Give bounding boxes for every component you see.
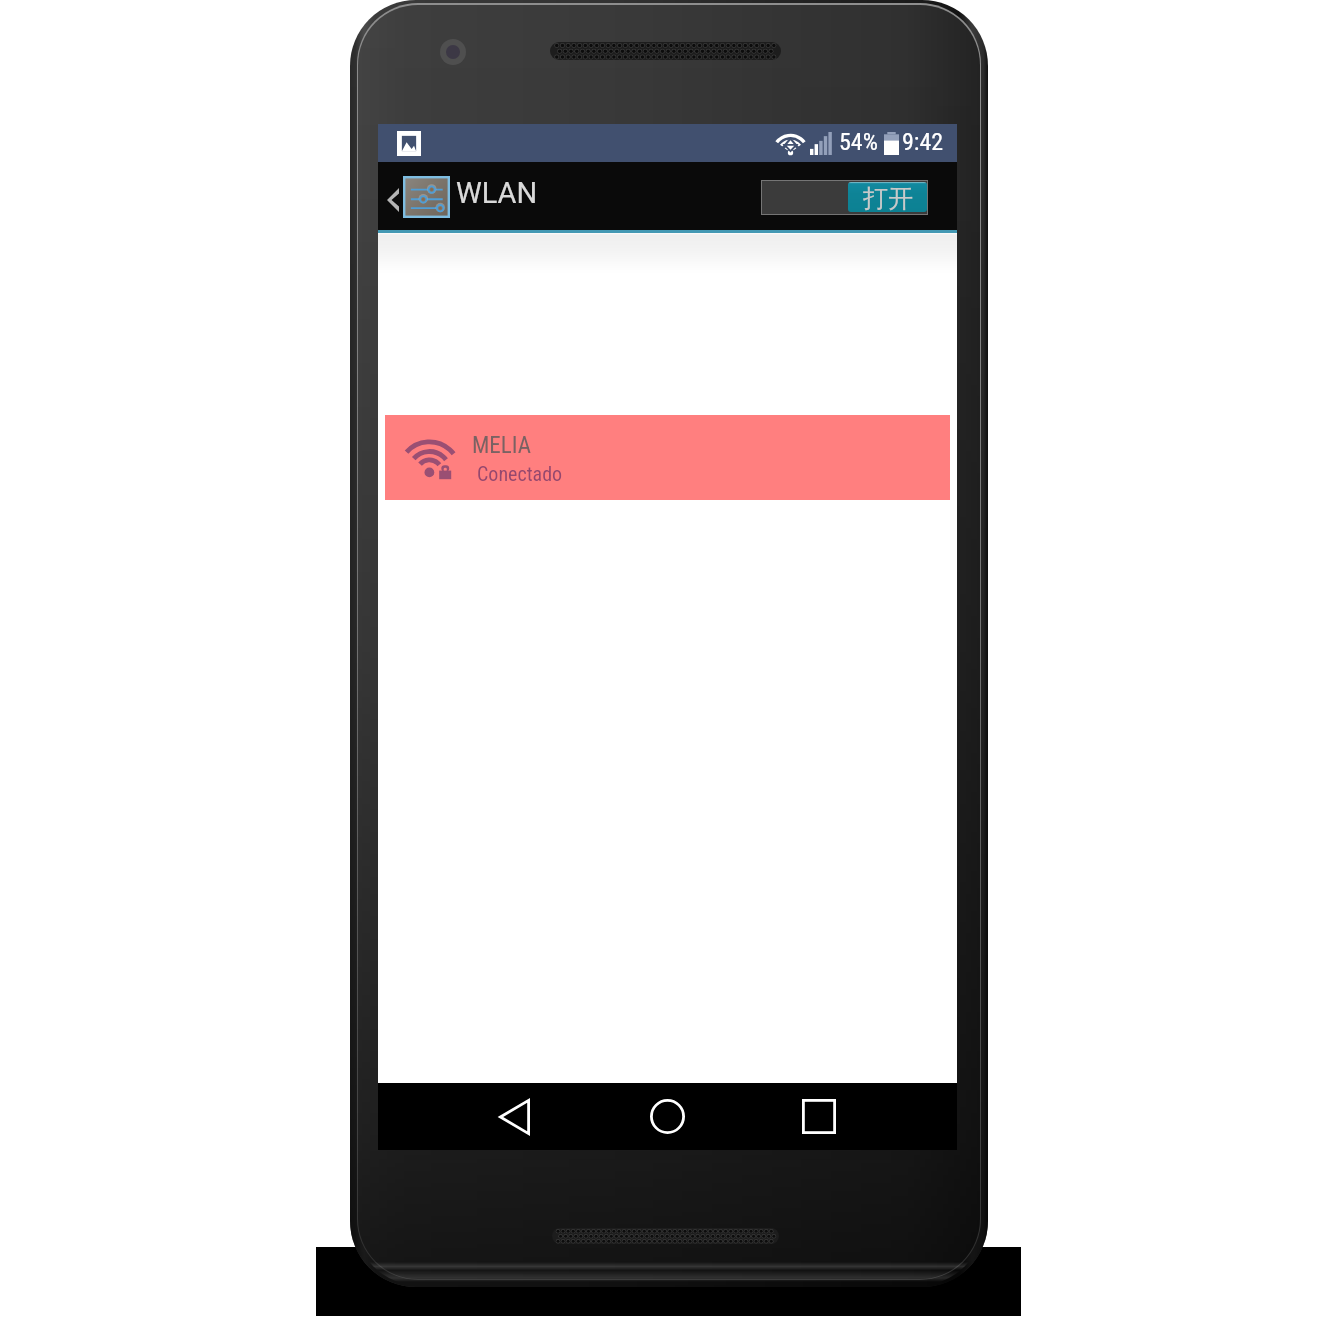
button[interactable]: 打开 [762,181,927,214]
button[interactable]: Home [619,1083,715,1150]
staticText: MELIA [472,432,531,459]
button[interactable]: Back [380,162,452,230]
button[interactable]: Recent apps [771,1083,867,1150]
staticText: 9:42 [902,128,944,156]
staticText: WLAN [456,176,538,210]
staticText: Conectado [477,462,563,485]
staticText: 打开 [863,183,913,212]
button[interactable]: MELIA [385,415,950,500]
staticText: 54% [839,128,878,156]
button[interactable]: Back [466,1083,562,1150]
